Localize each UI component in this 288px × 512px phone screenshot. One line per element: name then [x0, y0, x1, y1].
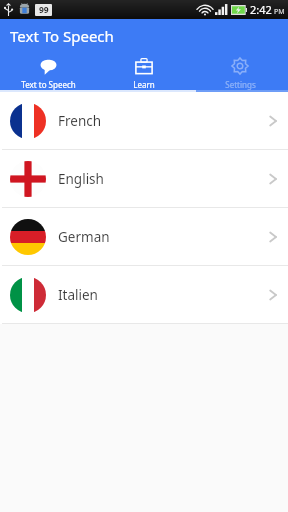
other: Open	[268, 287, 278, 303]
staticText: Text To Speech	[10, 26, 114, 46]
button[interactable]: English	[0, 150, 288, 207]
other: Open	[268, 171, 278, 187]
staticText: 2:42	[250, 2, 272, 17]
staticText: English	[58, 170, 268, 188]
other: Open	[268, 229, 278, 245]
button[interactable]: German	[0, 208, 288, 265]
staticText: Learn	[133, 79, 155, 90]
staticText: Text to Speech	[21, 79, 76, 90]
staticText: Italien	[58, 286, 268, 304]
button[interactable]: Learn	[96, 52, 192, 92]
staticText: German	[58, 228, 268, 246]
button[interactable]: Settings	[192, 52, 288, 92]
staticText: PM	[274, 7, 285, 17]
other: Open	[268, 113, 278, 129]
staticText: French	[58, 112, 268, 130]
button[interactable]: French	[0, 92, 288, 149]
staticText: 99	[39, 4, 49, 16]
button[interactable]: Italien	[0, 266, 288, 323]
button[interactable]: Text to Speech	[0, 52, 96, 92]
staticText: Settings	[225, 79, 256, 90]
